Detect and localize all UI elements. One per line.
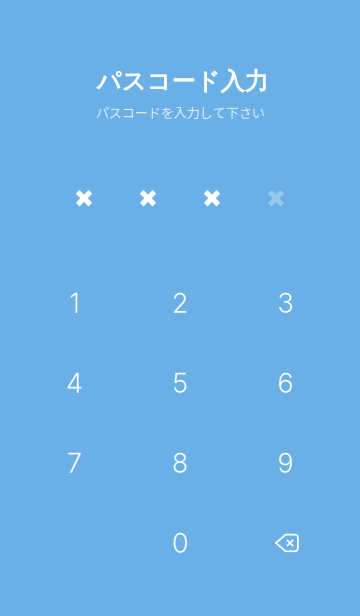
staticText: 4	[66, 367, 83, 399]
staticText: 0	[172, 527, 188, 559]
staticText: 6	[277, 367, 293, 399]
staticText: 9	[277, 447, 293, 479]
staticText: パスコードを入力して下さい	[95, 102, 264, 122]
staticText: 3	[277, 287, 293, 319]
button[interactable]: 2	[127, 263, 233, 343]
staticText: 5	[172, 367, 187, 399]
button[interactable]: Delete	[233, 503, 338, 583]
staticText: 7	[67, 447, 82, 479]
staticText: 1	[69, 287, 79, 319]
button[interactable]: 3	[233, 263, 338, 343]
button[interactable]: 0	[127, 503, 233, 583]
button[interactable]: 7	[22, 423, 127, 503]
button[interactable]: 8	[127, 423, 233, 503]
button[interactable]: 5	[127, 343, 233, 423]
button[interactable]: 9	[233, 423, 338, 503]
staticText: 8	[172, 447, 188, 479]
button[interactable]: 6	[233, 343, 338, 423]
button[interactable]: 1	[22, 263, 127, 343]
button[interactable]: 4	[22, 343, 127, 423]
staticText: パスコード入力	[96, 66, 268, 97]
staticText: 2	[172, 287, 188, 319]
